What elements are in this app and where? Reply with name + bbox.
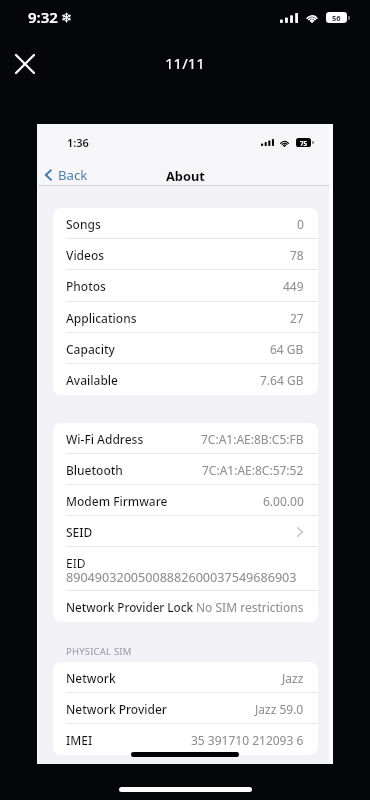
staticText: 7C:A1:AE:8B:C5:FB (201, 431, 304, 447)
staticText: Modem Firmware (66, 493, 168, 509)
staticText: Jazz 59.0 (255, 701, 304, 717)
staticText: Applications (66, 310, 137, 326)
staticText: Network (66, 670, 116, 686)
staticText: IMEI (66, 732, 93, 748)
staticText: 7.64 GB (260, 372, 304, 388)
staticText: Back (58, 166, 88, 184)
button[interactable]: IMEI (53, 724, 318, 755)
button[interactable]: Network Provider Lock (53, 591, 318, 622)
staticText: 78 (290, 247, 304, 263)
staticText: Capacity (66, 341, 115, 357)
button[interactable]: Bluetooth (53, 454, 318, 485)
button[interactable]: Wi-Fi Address (53, 423, 318, 454)
staticText: PHYSICAL SIM (66, 645, 132, 658)
staticText: 11/11 (165, 53, 205, 73)
staticText: Network Provider Lock (66, 599, 193, 615)
staticText: Available (66, 372, 118, 388)
button[interactable]: EID (53, 547, 318, 591)
staticText: Videos (66, 247, 105, 263)
staticText: 27 (290, 310, 304, 326)
staticText: 449 (283, 278, 304, 294)
staticText: Photos (66, 278, 106, 294)
button[interactable]: Back (45, 166, 88, 184)
staticText: 56 (332, 13, 341, 23)
button[interactable]: Capacity (53, 333, 318, 364)
button[interactable]: Network Provider (53, 693, 318, 724)
button[interactable]: Videos (53, 239, 318, 270)
staticText: About (166, 167, 205, 184)
button[interactable]: Available (53, 364, 318, 395)
button[interactable]: SEID (53, 516, 318, 547)
staticText: 35 391710 212093 6 (191, 732, 304, 748)
staticText: No SIM restrictions (196, 599, 304, 615)
button[interactable]: Close (11, 50, 39, 78)
staticText: Bluetooth (66, 462, 123, 478)
staticText: 6.00.00 (263, 493, 304, 509)
staticText: 64 GB (270, 341, 304, 357)
staticText: 1:36 (67, 135, 89, 150)
button[interactable]: Applications (53, 302, 318, 333)
staticText: 0 (297, 216, 304, 232)
staticText: EID (66, 555, 86, 571)
staticText: 7C:A1:AE:8C:57:52 (202, 462, 304, 478)
staticText: Wi-Fi Address (66, 431, 144, 447)
staticText: SEID (66, 524, 93, 540)
button[interactable]: Network (53, 662, 318, 693)
button[interactable]: Photos (53, 270, 318, 302)
staticText: 89049032005008882600037549686903 (66, 569, 297, 586)
staticText: 75 (300, 139, 308, 147)
staticText: 9:32 (28, 7, 58, 27)
staticText: Network Provider (66, 701, 167, 717)
staticText: Songs (66, 216, 101, 232)
button[interactable]: Songs (53, 208, 318, 239)
button[interactable]: Modem Firmware (53, 485, 318, 516)
staticText: Jazz (282, 670, 304, 686)
